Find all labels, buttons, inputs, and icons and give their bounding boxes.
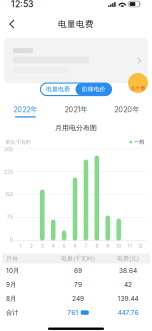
staticText: 150 [5, 192, 13, 197]
staticText: 42 [124, 281, 132, 288]
staticText: 69 [74, 267, 82, 274]
staticText: 阶梯电价 [81, 85, 105, 93]
staticText: 10 [116, 243, 121, 249]
staticText: 10月 [6, 266, 19, 275]
staticText: 139.44 [117, 295, 138, 302]
staticText: 38.64 [119, 267, 137, 274]
staticText: 一档 [134, 139, 144, 145]
staticText: 12 [138, 243, 143, 249]
staticText: 249 [72, 295, 84, 302]
staticText: 4 [52, 243, 55, 249]
button[interactable] [4, 38, 148, 83]
staticText: 761 [67, 309, 78, 316]
staticText: 8 [95, 243, 98, 249]
staticText: 2022年 [13, 105, 37, 114]
staticText: 电量电费 [46, 85, 70, 93]
staticText: 11 [128, 243, 132, 249]
staticText: 2021年 [64, 105, 87, 114]
staticText: 79 [74, 281, 82, 288]
button[interactable]: Back [2, 14, 22, 34]
staticText: 单位:千瓦时 [5, 139, 31, 145]
staticText: 3 [41, 243, 44, 249]
staticText: 9月 [6, 280, 16, 289]
button[interactable]: 电量电费 [40, 83, 75, 96]
staticText: 300 [4, 147, 13, 152]
staticText: 12:53 [11, 0, 33, 9]
button[interactable]: 点个赞 [128, 73, 148, 93]
staticText: 6 [73, 243, 76, 249]
staticText: 电量(千瓦时) [61, 255, 95, 262]
staticText: 5 [63, 243, 66, 249]
button[interactable]: 2022年 [0, 102, 51, 118]
button[interactable]: 2020年 [101, 102, 152, 118]
staticText: 2020年 [114, 105, 139, 114]
staticText: 月份 [6, 255, 18, 262]
staticText: 7 [84, 243, 87, 249]
staticText: 合计 [6, 308, 18, 317]
staticText: 点个赞 [130, 85, 145, 91]
button[interactable]: 2021年 [51, 102, 101, 118]
staticText: 75 [7, 214, 13, 220]
staticText: 225 [4, 169, 13, 175]
staticText: 0 [10, 237, 13, 242]
staticText: 1 [19, 243, 21, 249]
staticText: 8月 [6, 294, 16, 303]
staticText: 9 [106, 243, 109, 249]
button[interactable]: 阶梯电价 [75, 83, 111, 96]
staticText: 电量电费 [58, 19, 94, 29]
staticText: 447.76 [117, 309, 138, 316]
staticText: 2 [30, 243, 33, 249]
staticText: 月用电分布图 [55, 124, 97, 132]
staticText: 电费(元) [117, 255, 139, 262]
